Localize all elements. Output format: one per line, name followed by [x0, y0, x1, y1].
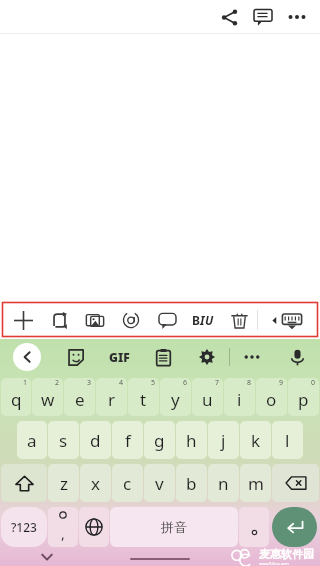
button[interactable]: Settings	[185, 339, 229, 375]
staticText: j	[221, 429, 226, 452]
staticText: z	[60, 472, 68, 495]
button[interactable]: j	[208, 421, 239, 459]
button[interactable]: 1	[1, 378, 31, 416]
staticText: 拼音	[161, 519, 187, 535]
staticText: y	[171, 388, 180, 411]
button[interactable]: v	[144, 464, 175, 502]
staticText: 8	[247, 378, 252, 388]
staticText: 2	[55, 378, 60, 388]
button[interactable]: Hide keyboard	[34, 547, 60, 566]
button[interactable]: 8	[224, 378, 255, 416]
button[interactable]: h	[176, 421, 207, 459]
button[interactable]: Hide keyboard	[258, 301, 314, 339]
button[interactable]: Share	[212, 0, 246, 34]
staticText: p	[298, 388, 309, 411]
button[interactable]: n	[208, 464, 239, 502]
staticText: ,	[61, 524, 65, 543]
button[interactable]: 2	[32, 378, 63, 416]
staticText: w	[41, 388, 55, 411]
button[interactable]: ?123	[1, 507, 47, 547]
button[interactable]: 9	[256, 378, 287, 416]
staticText: www.52mc.com	[259, 561, 289, 566]
staticText: U	[205, 312, 214, 328]
staticText: 4	[119, 378, 124, 388]
staticText: e	[75, 388, 85, 411]
button[interactable]: More options	[280, 0, 314, 34]
staticText: h	[186, 429, 197, 452]
button[interactable]: Comments	[246, 0, 280, 34]
button[interactable]: f	[112, 421, 143, 459]
button[interactable]: Voice input	[274, 339, 320, 375]
button[interactable]: z	[48, 464, 79, 502]
staticText: ?123	[11, 519, 37, 535]
button[interactable]: Change language	[79, 507, 109, 547]
button[interactable]: k	[240, 421, 271, 459]
button[interactable]: 0	[288, 378, 319, 416]
button[interactable]: Delete	[221, 301, 257, 339]
staticText: 9	[279, 378, 284, 388]
button[interactable]: GIF	[97, 339, 141, 375]
staticText: i	[237, 388, 242, 411]
button[interactable]: Stickers	[54, 339, 97, 375]
button[interactable]: 4	[96, 378, 127, 416]
staticText: t	[140, 388, 147, 411]
staticText: f	[125, 429, 131, 452]
button[interactable]: s	[48, 421, 79, 459]
staticText: k	[251, 429, 261, 452]
staticText: 0	[311, 378, 316, 388]
button[interactable]: Back	[0, 339, 54, 375]
button[interactable]: d	[80, 421, 111, 459]
button[interactable]: Comment	[149, 301, 185, 339]
button[interactable]: Period	[239, 507, 269, 547]
button[interactable]: Mention	[113, 301, 149, 339]
button[interactable]: More	[230, 339, 274, 375]
button[interactable]: Repost	[41, 301, 77, 339]
button[interactable]: g	[144, 421, 175, 459]
staticText: l	[285, 429, 290, 452]
staticText: GIF	[109, 349, 130, 365]
staticText: 6	[183, 378, 188, 388]
button[interactable]: l	[272, 421, 303, 459]
staticText: 7	[215, 378, 220, 388]
staticText: b	[186, 472, 197, 495]
staticText: a	[27, 429, 37, 452]
button[interactable]: 7	[192, 378, 223, 416]
button[interactable]: 6	[160, 378, 191, 416]
button[interactable]: c	[112, 464, 143, 502]
button[interactable]: 拼音	[110, 507, 238, 547]
button[interactable]: 3	[64, 378, 95, 416]
button[interactable]: Backspace	[272, 464, 319, 502]
staticText: 1	[23, 378, 28, 388]
staticText: c	[123, 472, 132, 495]
staticText: n	[218, 472, 229, 495]
staticText: u	[202, 388, 213, 411]
staticText: r	[108, 388, 116, 411]
staticText: o	[266, 388, 277, 411]
staticText: 3	[87, 378, 92, 388]
button[interactable]: Enter	[272, 507, 317, 547]
button[interactable]: Text style	[185, 301, 221, 339]
staticText: m	[248, 472, 264, 495]
button[interactable]: x	[80, 464, 111, 502]
button[interactable]: a	[17, 421, 47, 459]
button[interactable]: Add	[6, 301, 41, 339]
button[interactable]: Image	[77, 301, 113, 339]
button[interactable]: b	[176, 464, 207, 502]
button[interactable]: m	[240, 464, 271, 502]
staticText: x	[91, 472, 100, 495]
staticText: B	[192, 312, 200, 328]
staticText: v	[155, 472, 164, 495]
staticText: s	[59, 429, 68, 452]
staticText: 麦惠软件园	[259, 547, 314, 561]
staticText: d	[90, 429, 101, 452]
staticText: q	[11, 388, 22, 411]
button[interactable]: Shift	[1, 464, 47, 502]
staticText: 5	[151, 378, 156, 388]
button[interactable]: 5	[128, 378, 159, 416]
button[interactable]: Clipboard	[141, 339, 185, 375]
button[interactable]: Emoji and comma	[48, 507, 78, 547]
staticText: I	[200, 312, 205, 328]
staticText: g	[154, 429, 165, 452]
